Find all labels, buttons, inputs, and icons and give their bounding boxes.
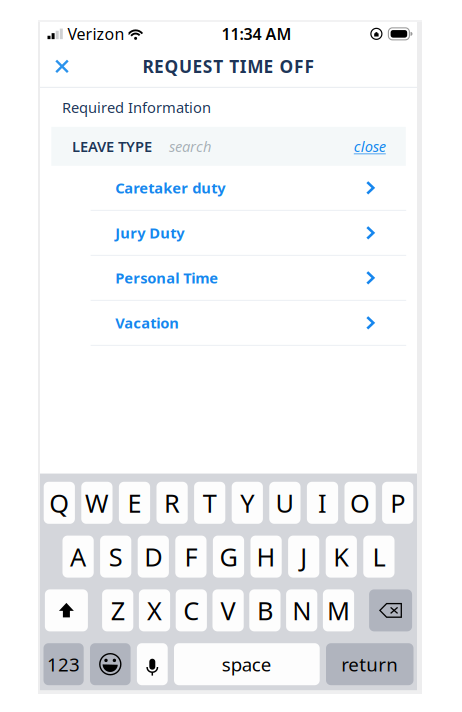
staticText: Caretaker duty — [115, 178, 225, 198]
button[interactable]: F — [175, 536, 206, 578]
staticText: V — [221, 594, 236, 627]
button[interactable]: G — [213, 536, 244, 578]
staticText: N — [292, 594, 311, 627]
staticText: Verizon — [67, 23, 124, 44]
button[interactable]: R — [156, 482, 188, 524]
staticText: R — [164, 486, 180, 520]
staticText: space — [222, 652, 272, 677]
button[interactable]: L — [363, 536, 394, 578]
button[interactable]: J — [288, 536, 319, 578]
button[interactable]: Delete — [369, 589, 412, 631]
staticText: Jury Duty — [115, 223, 184, 243]
button[interactable]: N — [286, 589, 317, 631]
staticText: M — [327, 594, 350, 627]
staticText: 11:34 AM — [222, 23, 292, 44]
staticText: W — [85, 486, 109, 520]
button[interactable]: X — [139, 589, 170, 631]
button[interactable]: W — [81, 482, 112, 524]
staticText: B — [257, 594, 273, 627]
staticText: K — [333, 540, 349, 573]
button[interactable]: Personal Time — [91, 256, 406, 300]
staticText: T — [203, 486, 217, 520]
button[interactable]: Close — [40, 46, 84, 86]
staticText: I — [318, 486, 327, 520]
button[interactable]: Jury Duty — [91, 211, 406, 255]
button[interactable]: H — [250, 536, 282, 578]
staticText: search — [169, 137, 211, 156]
staticText: 123 — [47, 652, 80, 677]
staticText: L — [372, 540, 385, 573]
staticText: Q — [49, 486, 69, 520]
staticText: Vacation — [115, 313, 179, 333]
button[interactable]: 123 — [43, 643, 84, 685]
button[interactable]: Caretaker duty — [91, 166, 406, 210]
button[interactable]: M — [323, 589, 354, 631]
button[interactable]: T — [194, 482, 225, 524]
staticText: Y — [240, 486, 254, 520]
staticText: LEAVE TYPE — [72, 137, 152, 156]
button[interactable]: Dictate — [137, 643, 168, 685]
staticText: Personal Time — [115, 268, 218, 288]
staticText: E — [127, 486, 141, 520]
staticText: H — [257, 540, 276, 573]
staticText: return — [341, 652, 398, 677]
button[interactable]: D — [138, 536, 169, 578]
button[interactable]: S — [100, 536, 131, 578]
button[interactable]: A — [62, 536, 94, 578]
staticText: S — [109, 540, 123, 573]
staticText: C — [183, 594, 199, 627]
button[interactable]: I — [307, 482, 338, 524]
button[interactable]: K — [326, 536, 357, 578]
staticText: X — [147, 594, 162, 627]
staticText: D — [144, 540, 162, 573]
staticText: Z — [111, 594, 125, 627]
button[interactable]: return — [326, 643, 413, 685]
button[interactable]: close — [354, 137, 386, 156]
staticText: P — [390, 486, 405, 520]
button[interactable]: Shift — [45, 589, 88, 631]
button[interactable]: Z — [102, 589, 133, 631]
button[interactable]: Q — [44, 482, 75, 524]
staticText: G — [219, 540, 237, 573]
staticText: F — [184, 540, 197, 573]
button[interactable]: space — [174, 643, 320, 685]
button[interactable]: E — [119, 482, 150, 524]
button[interactable]: V — [212, 589, 244, 631]
button[interactable]: Vacation — [91, 301, 406, 345]
button[interactable]: C — [176, 589, 207, 631]
staticText: REQUEST TIME OFF — [143, 55, 314, 78]
staticText: U — [275, 486, 294, 520]
button[interactable]: B — [249, 589, 280, 631]
staticText: A — [70, 540, 86, 573]
staticText: O — [350, 486, 370, 520]
button[interactable]: Emoji — [90, 643, 131, 685]
staticText: J — [300, 540, 307, 573]
staticText: Required Information — [62, 98, 211, 117]
button[interactable]: U — [269, 482, 300, 524]
button[interactable]: Y — [232, 482, 263, 524]
button[interactable]: P — [382, 482, 413, 524]
staticText: close — [354, 137, 386, 156]
button[interactable]: O — [344, 482, 376, 524]
